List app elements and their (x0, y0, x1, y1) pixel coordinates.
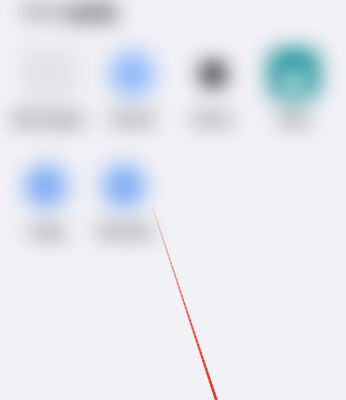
button[interactable]: Share (22, 0, 68, 22)
staticText: Nearby (97, 220, 152, 240)
staticText: Copy (28, 220, 65, 240)
button[interactable]: Messages (7, 44, 91, 128)
staticText: Messages (12, 108, 86, 128)
staticText: with (68, 0, 118, 27)
button[interactable]: Nearby (82, 156, 166, 240)
button[interactable]: Drive (171, 44, 255, 128)
button[interactable]: Gmail (90, 44, 174, 128)
staticText: Play (278, 108, 310, 128)
staticText: Share (22, 0, 68, 22)
staticText: Drive (193, 108, 233, 128)
button[interactable]: Copy (4, 156, 88, 240)
button[interactable]: Play (252, 44, 336, 128)
staticText: Gmail (110, 108, 154, 128)
